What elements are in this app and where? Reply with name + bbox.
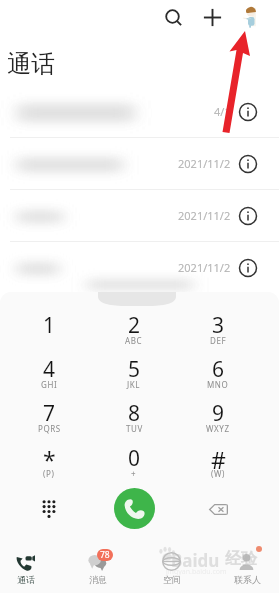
button[interactable]: 8 [94,399,174,443]
button[interactable]: 3 [178,311,258,355]
button[interactable]: Call details [237,153,259,175]
button[interactable]: 空间 [138,540,206,593]
staticText: 通话 [7,49,55,79]
staticText: 9 [212,399,225,425]
staticText: PQRS [38,423,61,434]
staticText: ABC [125,335,143,346]
staticText: JKL [127,379,141,390]
staticText: 1 [43,311,56,337]
staticText: 2021/11/2 [178,156,231,171]
button[interactable]: 通话 [0,540,60,593]
staticText: (P) [43,468,55,479]
button[interactable]: # [178,444,258,488]
staticText: + [131,468,137,479]
staticText: GHI [41,379,58,390]
button[interactable]: 2021/11/2 [0,242,279,293]
staticText: 5 [128,355,141,381]
staticText: 2021/11/2 [178,260,231,275]
button[interactable]: 1 [9,311,89,355]
staticText: 2 [128,311,141,337]
staticText: # [211,444,226,470]
button[interactable]: 9 [178,399,258,443]
button[interactable]: Call details [237,257,259,279]
button[interactable]: 7 [9,399,89,443]
staticText: 6 [212,355,225,381]
staticText: 经验 [225,549,257,569]
button[interactable]: Call details [237,205,259,227]
staticText: WXYZ [206,423,230,434]
staticText: TUV [126,423,143,434]
staticText: (W) [211,468,226,479]
staticText: 0 [128,444,141,470]
staticText: 2021/11/2 [178,208,231,223]
staticText: MNO [207,379,229,390]
staticText: jingyan.baidu.com [166,567,227,577]
staticText: * [43,444,56,470]
staticText: 7 [43,399,56,425]
button[interactable]: Call details [237,101,259,123]
button[interactable]: 4/1 [0,86,279,138]
staticText: 联系人 [234,574,261,585]
button[interactable]: 2021/11/2 [0,190,279,242]
button[interactable]: 78 [64,540,132,593]
staticText: Baidu [171,549,220,572]
staticText: 4 [43,355,56,381]
staticText: 78 [100,549,110,561]
button[interactable]: Backspace [202,497,234,521]
staticText: 3 [212,311,225,337]
staticText: DEF [210,335,227,346]
button[interactable]: Call [114,488,155,529]
staticText: 8 [128,399,141,425]
staticText: 通话 [17,574,35,585]
button[interactable]: 4 [9,355,89,399]
button[interactable]: Search [158,2,187,31]
button[interactable]: 6 [178,355,258,399]
button[interactable]: * [9,444,89,488]
staticText: 4/1 [214,104,231,119]
staticText: 空间 [163,574,181,585]
button[interactable]: 2021/11/2 [0,138,279,190]
button[interactable]: 5 [94,355,174,399]
button[interactable]: 2 [94,311,174,355]
staticText: 消息 [89,574,107,585]
button[interactable]: 0 [94,444,174,488]
button[interactable]: Add [198,2,227,31]
button[interactable]: Profile [243,6,257,28]
button[interactable]: Hide keypad [33,493,65,525]
button[interactable]: 联系人 [213,540,279,593]
